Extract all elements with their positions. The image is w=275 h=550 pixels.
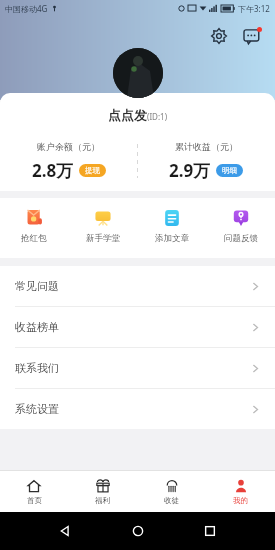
button[interactable]: Avatar [113, 48, 163, 98]
button[interactable]: 联系我们 [0, 348, 275, 389]
staticText: 新手学堂 [86, 233, 120, 244]
button[interactable]: Messages [239, 22, 267, 50]
staticText: 明细 [222, 166, 237, 175]
staticText: 2.9万 [169, 159, 211, 182]
button[interactable]: 明细 [216, 164, 243, 177]
staticText: 中国移动4G [5, 3, 48, 14]
button[interactable]: 我的 [206, 470, 275, 512]
button[interactable]: Settings [205, 22, 233, 50]
button[interactable]: 首页 [0, 470, 68, 512]
staticText: 我的 [233, 496, 248, 505]
staticText: 收益榜单 [15, 320, 59, 334]
staticText: 常见问题 [15, 279, 59, 293]
button[interactable]: 常见问题 [0, 266, 275, 307]
button[interactable]: 提现 [79, 164, 106, 177]
button[interactable]: 福利 [68, 470, 137, 512]
button[interactable]: 添加文章 [137, 204, 206, 248]
staticText: 联系我们 [15, 361, 59, 375]
staticText: 系统设置 [15, 402, 59, 416]
staticText: 下午3:12 [238, 3, 270, 14]
button[interactable]: 新手学堂 [68, 204, 137, 248]
button[interactable]: 收徒 [137, 470, 206, 512]
staticText: (ID:1) [147, 111, 168, 122]
staticText: 点点发 [108, 107, 147, 123]
staticText: 添加文章 [155, 233, 189, 244]
staticText: 首页 [27, 496, 42, 505]
staticText: 问题反馈 [224, 233, 258, 244]
staticText: 抢红包 [21, 233, 47, 244]
staticText: 收徒 [164, 496, 179, 505]
button[interactable]: 收益榜单 [0, 307, 275, 348]
staticText: 账户余额（元） [37, 141, 100, 152]
staticText: 2.8万 [32, 159, 74, 182]
staticText: 福利 [95, 496, 110, 505]
button[interactable]: 系统设置 [0, 389, 275, 429]
button[interactable]: 问题反馈 [206, 204, 275, 248]
button[interactable]: 抢红包 [0, 204, 68, 248]
staticText: 累计收益（元） [175, 141, 238, 152]
staticText: 提现 [85, 166, 100, 175]
